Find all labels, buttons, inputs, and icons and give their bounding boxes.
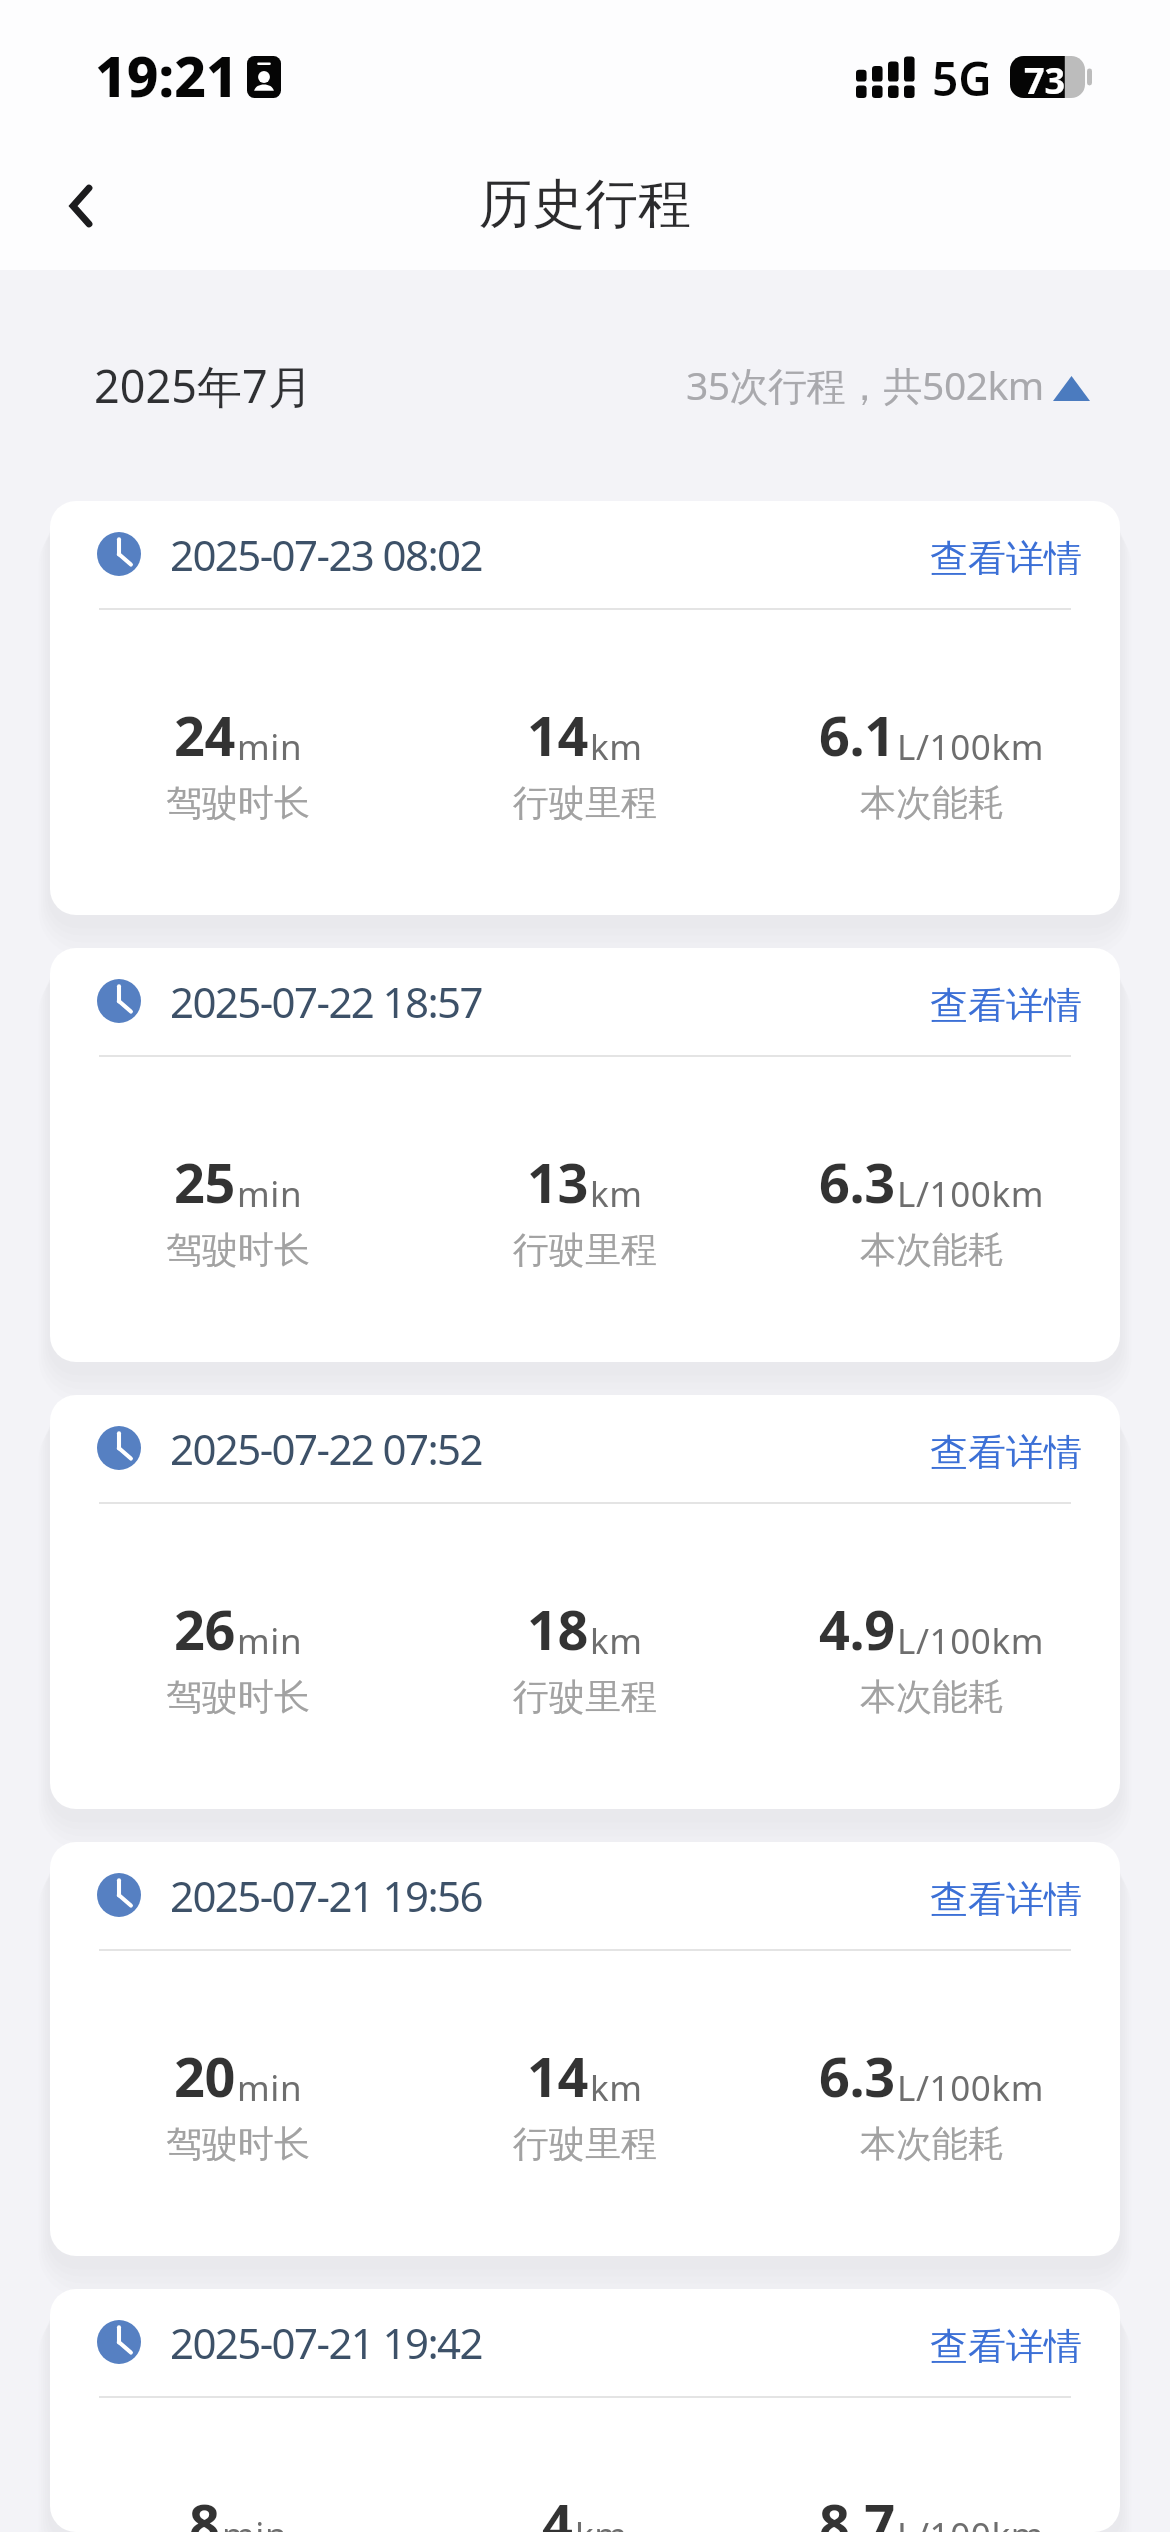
staticText: 查看详情 <box>930 1429 1082 1469</box>
staticText: min <box>237 723 303 771</box>
staticText: min <box>237 1170 303 1218</box>
staticText: 查看详情 <box>930 1876 1082 1916</box>
staticText: 2025-07-21 19:56 <box>170 1867 482 1915</box>
staticText: 35次行程，共502km <box>686 358 1044 411</box>
button[interactable]: 查看详情 <box>906 1424 1082 1472</box>
button[interactable]: 2025-07-22 07:52 <box>50 1395 1120 1809</box>
staticText: km <box>590 2064 643 2112</box>
staticText: min <box>237 1617 303 1665</box>
staticText: 4.9 <box>819 1592 895 1666</box>
button[interactable]: 查看详情 <box>906 1871 1082 1919</box>
staticText: 2025年7月 <box>94 355 313 416</box>
staticText: L/100km <box>897 723 1045 771</box>
button[interactable]: Back <box>21 146 141 266</box>
staticText: 6.3 <box>819 2039 895 2113</box>
staticText: 5G <box>932 47 992 110</box>
staticText: 6.1 <box>819 698 895 772</box>
staticText: km <box>575 2511 628 2532</box>
staticText: min <box>222 2511 288 2532</box>
staticText: 驾驶时长 <box>166 1227 310 1272</box>
staticText: L/100km <box>897 1617 1045 1665</box>
staticText: 2025-07-21 19:42 <box>170 2314 482 2362</box>
staticText: 4 <box>542 2486 573 2532</box>
staticText: 18 <box>527 1592 588 1666</box>
staticText: 2025-07-22 18:57 <box>170 973 482 1021</box>
button[interactable]: 2025-07-21 19:42 <box>50 2289 1120 2532</box>
staticText: 驾驶时长 <box>166 780 310 825</box>
button[interactable]: 查看详情 <box>906 977 1082 1025</box>
button[interactable]: 查看详情 <box>906 530 1082 578</box>
staticText: 24 <box>174 698 235 772</box>
staticText: 行驶里程 <box>513 1227 657 1272</box>
staticText: 13 <box>527 1145 588 1219</box>
staticText: 本次能耗 <box>860 1227 1004 1272</box>
staticText: 查看详情 <box>930 535 1082 575</box>
staticText: 历史行程 <box>479 171 691 238</box>
staticText: L/100km <box>897 1170 1045 1218</box>
staticText: km <box>590 1617 643 1665</box>
staticText: 2025-07-23 08:02 <box>170 526 482 574</box>
staticText: 行驶里程 <box>513 2121 657 2166</box>
staticText: 驾驶时长 <box>166 2121 310 2166</box>
staticText: 6.3 <box>819 1145 895 1219</box>
staticText: 8.7 <box>819 2486 895 2532</box>
staticText: 26 <box>174 1592 235 1666</box>
staticText: L/100km <box>897 2064 1045 2112</box>
staticText: 25 <box>174 1145 235 1219</box>
staticText: 本次能耗 <box>860 780 1004 825</box>
staticText: km <box>590 723 643 771</box>
staticText: 本次能耗 <box>860 1674 1004 1719</box>
staticText: 查看详情 <box>930 982 1082 1022</box>
staticText: L/100km <box>897 2511 1045 2532</box>
staticText: 20 <box>174 2039 235 2113</box>
button[interactable]: 35次行程，共502km <box>686 358 1090 411</box>
staticText: 19:21 <box>95 38 238 113</box>
staticText: 73 <box>1024 56 1066 98</box>
staticText: 查看详情 <box>930 2323 1082 2363</box>
staticText: 8 <box>189 2486 220 2532</box>
staticText: 本次能耗 <box>860 2121 1004 2166</box>
button[interactable]: 查看详情 <box>906 2318 1082 2366</box>
staticText: 驾驶时长 <box>166 1674 310 1719</box>
staticText: km <box>590 1170 643 1218</box>
staticText: 行驶里程 <box>513 1674 657 1719</box>
button[interactable]: 2025-07-23 08:02 <box>50 501 1120 915</box>
staticText: 行驶里程 <box>513 780 657 825</box>
button[interactable]: 2025-07-22 18:57 <box>50 948 1120 1362</box>
staticText: 14 <box>527 2039 588 2113</box>
staticText: 14 <box>527 698 588 772</box>
button[interactable]: 2025-07-21 19:56 <box>50 1842 1120 2256</box>
staticText: min <box>237 2064 303 2112</box>
staticText: 2025-07-22 07:52 <box>170 1420 482 1468</box>
